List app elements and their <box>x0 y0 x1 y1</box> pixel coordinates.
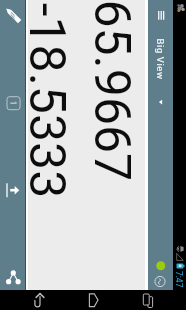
button[interactable]: GPS fix <box>149 254 174 278</box>
button[interactable]: Record track <box>149 270 174 293</box>
button[interactable]: Back <box>28 290 50 310</box>
button[interactable]: Home <box>81 290 103 310</box>
button[interactable]: Recent apps <box>134 290 156 310</box>
button[interactable]: Share <box>0 266 25 289</box>
button[interactable]: Export <box>0 181 25 201</box>
button[interactable]: Zoom level <box>0 92 25 114</box>
button[interactable]: Edit <box>0 4 25 29</box>
button[interactable]: Open navigation menu <box>149 4 174 28</box>
button[interactable] <box>149 32 174 114</box>
